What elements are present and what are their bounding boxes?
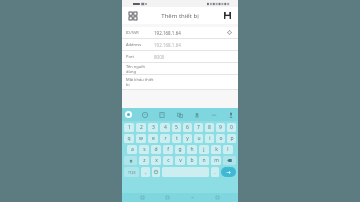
button[interactable]: ,: [141, 167, 150, 177]
staticText: ID/SVR: [126, 30, 152, 35]
staticText: x: [155, 157, 158, 164]
button[interactable]: Keyboard settings: [125, 111, 132, 118]
staticText: j: [203, 146, 205, 153]
staticText: 0: [230, 124, 233, 131]
staticText: r: [164, 135, 167, 142]
button[interactable]: Mật khẩu thiết: [122, 75, 238, 90]
button[interactable]: 9: [216, 123, 225, 132]
button[interactable]: Back: [188, 193, 197, 202]
staticText: ,: [145, 169, 147, 176]
button[interactable]: k: [211, 145, 221, 154]
button[interactable]: Emoji: [152, 167, 160, 177]
button[interactable]: 8: [205, 123, 214, 132]
button[interactable]: 6: [183, 123, 192, 132]
button[interactable]: Voice input: [226, 110, 235, 119]
staticText: a: [131, 146, 134, 153]
button[interactable]: m: [211, 156, 221, 165]
staticText: d: [154, 146, 158, 153]
button[interactable]: o: [216, 134, 225, 143]
button[interactable]: b: [187, 156, 197, 165]
staticText: .: [214, 169, 216, 176]
button[interactable]: .: [211, 167, 219, 177]
staticText: n: [202, 157, 206, 164]
staticText: f: [167, 146, 169, 153]
button[interactable]: 7: [194, 123, 203, 132]
staticText: 1: [128, 124, 131, 131]
button[interactable]: u: [194, 134, 203, 143]
staticText: Tên người dùng: [126, 64, 152, 74]
button[interactable]: Backspace: [223, 156, 236, 165]
button[interactable]: 1: [124, 123, 134, 132]
button[interactable]: Home: [163, 193, 172, 202]
staticText: Mật khẩu thiết: [126, 77, 154, 82]
button[interactable]: Theme: [192, 110, 201, 119]
staticText: 5: [175, 124, 178, 131]
staticText: b: [190, 157, 194, 164]
button[interactable]: t: [172, 134, 181, 143]
staticText: e: [152, 135, 155, 142]
staticText: s: [143, 146, 146, 153]
button[interactable]: x: [151, 156, 161, 165]
button[interactable]: w: [136, 134, 146, 143]
button[interactable]: 3: [148, 123, 158, 132]
button[interactable]: Menu: [126, 9, 139, 22]
button[interactable]: Keyboard options: [213, 193, 222, 202]
button[interactable]: z: [139, 156, 149, 165]
button[interactable]: 4: [160, 123, 170, 132]
button[interactable]: d: [151, 145, 161, 154]
button[interactable]: 0: [227, 123, 236, 132]
button[interactable]: 5: [172, 123, 181, 132]
button[interactable]: Tên người dùng: [122, 63, 238, 75]
button[interactable]: p: [227, 134, 236, 143]
button[interactable]: 2: [136, 123, 146, 132]
staticText: t: [176, 135, 178, 142]
button[interactable]: Shift: [124, 156, 137, 165]
button[interactable]: ?123: [124, 167, 139, 177]
button[interactable]: c: [163, 156, 173, 165]
staticText: v: [179, 157, 182, 164]
staticText: p: [230, 135, 234, 142]
button[interactable]: g: [175, 145, 185, 154]
staticText: 192.168.1.64: [154, 42, 225, 48]
staticText: w: [139, 135, 143, 142]
button[interactable]: Clipboard: [157, 110, 166, 119]
staticText: l: [227, 146, 229, 153]
button[interactable]: j: [199, 145, 209, 154]
button[interactable]: v: [175, 156, 185, 165]
button[interactable]: Hide keyboard: [209, 110, 218, 119]
button[interactable]: f: [163, 145, 173, 154]
button[interactable]: Sticker: [140, 110, 149, 119]
staticText: i: [209, 135, 211, 142]
button[interactable]: Enter: [221, 167, 236, 177]
staticText: 6: [186, 124, 189, 131]
staticText: y: [186, 135, 189, 142]
staticText: 8000: [154, 54, 225, 60]
button[interactable]: ID/SVR: [122, 27, 238, 39]
staticText: 9: [219, 124, 222, 131]
staticText: 3: [152, 124, 155, 131]
button[interactable]: h: [187, 145, 197, 154]
staticText: m: [214, 157, 219, 164]
staticText: Thêm thiết bị: [161, 12, 199, 20]
button[interactable]: Recents: [138, 193, 147, 202]
button[interactable]: q: [124, 134, 134, 143]
button[interactable]: e: [148, 134, 158, 143]
staticText: c: [167, 157, 170, 164]
staticText: q: [127, 135, 131, 142]
button[interactable]: r: [160, 134, 170, 143]
button[interactable]: Port: [122, 51, 238, 63]
staticText: 2: [140, 124, 143, 131]
button[interactable]: Settings: [225, 28, 234, 37]
button[interactable]: i: [205, 134, 214, 143]
button[interactable]: Save: [221, 9, 234, 22]
button[interactable]: n: [199, 156, 209, 165]
button[interactable]: s: [139, 145, 149, 154]
staticText: 192.168.1.64: [154, 30, 225, 36]
button[interactable]: l: [223, 145, 233, 154]
button[interactable]: Translate: [175, 110, 184, 119]
button[interactable]: Address: [122, 39, 238, 51]
button[interactable]: a: [127, 145, 137, 154]
button[interactable]: y: [183, 134, 192, 143]
